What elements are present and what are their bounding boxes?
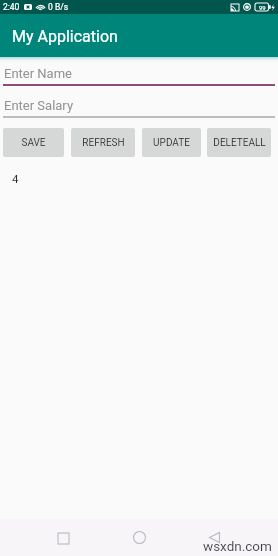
staticText: SAVE xyxy=(21,137,46,149)
button[interactable]: SAVE xyxy=(3,128,64,157)
staticText: Enter Name xyxy=(4,66,72,81)
staticText: 99 xyxy=(259,4,266,11)
staticText: Enter Salary xyxy=(4,98,74,113)
button[interactable]: DELETEALL xyxy=(207,128,271,157)
staticText: REFRESH xyxy=(82,137,125,149)
button[interactable]: Enter Salary xyxy=(0,96,278,118)
staticText: wsxdn.com xyxy=(203,538,272,554)
button[interactable]: Home xyxy=(123,521,155,553)
staticText: DELETEALL xyxy=(213,137,266,149)
button[interactable]: UPDATE xyxy=(142,128,201,157)
button[interactable]: Back xyxy=(198,521,230,553)
button[interactable]: Recent apps xyxy=(47,522,79,554)
staticText: My Application xyxy=(12,27,118,46)
staticText: 4 xyxy=(12,172,19,185)
button[interactable]: Enter Name xyxy=(0,64,278,86)
staticText: 2:40 xyxy=(3,2,20,12)
staticText: UPDATE xyxy=(153,137,190,149)
staticText: 0 B/s xyxy=(48,2,69,12)
button[interactable]: REFRESH xyxy=(71,128,135,157)
